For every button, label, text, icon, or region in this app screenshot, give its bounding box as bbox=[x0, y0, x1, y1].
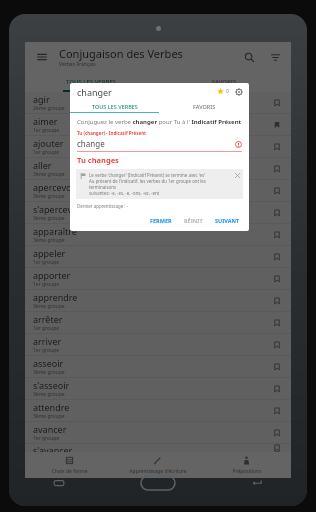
staticText: 1er groupe bbox=[33, 127, 60, 134]
button[interactable]: Bookmark avancer bbox=[271, 427, 283, 439]
button[interactable]: avancer bbox=[25, 422, 291, 443]
staticText: Tu (changer) - Indicatif Présent bbox=[77, 130, 147, 136]
staticText: apparaître bbox=[33, 225, 77, 237]
staticText: 1er groupe bbox=[33, 259, 60, 266]
staticText: changer bbox=[77, 86, 112, 98]
staticText: Tu changes bbox=[77, 155, 119, 165]
other: Error bbox=[234, 140, 242, 148]
button[interactable]: Bookmark attendre bbox=[271, 405, 283, 417]
staticText: RÉINIT bbox=[184, 217, 203, 224]
staticText: Conjugaison des Verbes bbox=[59, 46, 183, 61]
button[interactable]: SUIVANT bbox=[212, 215, 243, 226]
button[interactable]: Bookmark apercevoir bbox=[271, 185, 283, 197]
staticText: 1er groupe bbox=[33, 281, 60, 288]
button[interactable]: Bookmark appeler bbox=[271, 251, 283, 263]
staticText: 3ème groupe bbox=[33, 369, 65, 376]
staticText: 3ème groupe bbox=[33, 303, 65, 310]
button[interactable]: apercevoir bbox=[25, 180, 291, 201]
staticText: ajouter bbox=[33, 137, 64, 149]
button[interactable]: Bookmark arriver bbox=[271, 339, 283, 351]
button[interactable]: Bookmark apparaître bbox=[271, 229, 283, 241]
button[interactable]: Choix de forme bbox=[25, 452, 113, 478]
staticText: Apprentissage d'écriture bbox=[129, 468, 187, 475]
staticText: 1er groupe bbox=[33, 149, 60, 156]
staticText: s'avancer bbox=[33, 444, 73, 452]
staticText: apporter bbox=[33, 269, 71, 281]
staticText: Conjuguez le verbe changer pour Tu à l' … bbox=[77, 118, 242, 126]
staticText: apercevoir bbox=[33, 181, 78, 193]
button[interactable]: Prépositions bbox=[202, 452, 291, 478]
button[interactable]: Bookmark aller bbox=[271, 163, 283, 175]
button[interactable]: attendre bbox=[25, 400, 291, 421]
button[interactable]: Bookmark apprendre bbox=[271, 295, 283, 307]
staticText: arriver bbox=[33, 335, 62, 347]
staticText: 2ème groupe bbox=[33, 105, 65, 112]
staticText: apprendre bbox=[33, 291, 78, 303]
button[interactable]: aimer bbox=[25, 114, 291, 135]
staticText: TOUS LES VERBES bbox=[66, 78, 117, 86]
staticText: asseoir bbox=[33, 357, 64, 369]
button[interactable]: ajouter bbox=[25, 136, 291, 157]
staticText: 1er groupe bbox=[33, 325, 60, 332]
staticText: suivantes: -e, -es, -e, -ons, -ez, -ent bbox=[89, 190, 160, 196]
staticText: Le verbe 'changer' (Indicatif Présent) s… bbox=[89, 172, 206, 178]
button[interactable]: Bookmark s'avancer bbox=[271, 444, 283, 452]
button[interactable]: TOUS LES VERBES bbox=[70, 100, 159, 113]
button[interactable]: Search bbox=[241, 49, 257, 65]
button[interactable]: agir bbox=[25, 92, 291, 113]
button[interactable]: Bookmark apporter bbox=[271, 273, 283, 285]
button[interactable]: FAVORIS bbox=[159, 100, 249, 113]
button[interactable]: Bookmark asseoir bbox=[271, 361, 283, 373]
button[interactable]: Bookmark aimer bbox=[271, 119, 283, 131]
button[interactable]: arriver bbox=[25, 334, 291, 355]
staticText: 1er groupe bbox=[33, 347, 60, 354]
staticText: s'apercevoir bbox=[33, 203, 84, 215]
button[interactable]: FAVORIS bbox=[158, 72, 291, 92]
staticText: attendre bbox=[33, 401, 70, 413]
staticText: SUIVANT bbox=[215, 217, 240, 224]
button[interactable]: Bookmark s'asseoir bbox=[271, 383, 283, 395]
button[interactable]: apprendre bbox=[25, 290, 291, 311]
staticText: Choix de forme bbox=[51, 468, 88, 475]
staticText: 3ème groupe bbox=[33, 171, 65, 178]
button[interactable]: s'avancer bbox=[25, 444, 291, 452]
button[interactable]: Close hint bbox=[234, 172, 240, 178]
button[interactable]: Bookmark arrêter bbox=[271, 317, 283, 329]
button[interactable]: arrêter bbox=[25, 312, 291, 333]
staticText: Prépositions bbox=[232, 468, 262, 475]
staticText: change bbox=[77, 138, 105, 149]
button[interactable]: appeler bbox=[25, 246, 291, 267]
staticText: FERMER bbox=[150, 217, 172, 224]
button[interactable]: TOUS LES VERBES bbox=[25, 72, 158, 92]
staticText: avancer bbox=[33, 423, 67, 435]
button[interactable]: Settings bbox=[233, 86, 244, 97]
staticText: arrêter bbox=[33, 313, 63, 325]
button[interactable]: aller bbox=[25, 158, 291, 179]
staticText: Au présent de l'indicatif, les verbes du… bbox=[89, 178, 232, 190]
button[interactable]: Apprentissage d'écriture bbox=[113, 452, 202, 478]
button[interactable]: Menu bbox=[33, 48, 51, 66]
staticText: Verbes Français bbox=[59, 61, 96, 68]
button[interactable]: apparaître bbox=[25, 224, 291, 245]
staticText: TOUS LES VERBES bbox=[92, 103, 138, 110]
button[interactable]: Filter bbox=[267, 49, 283, 65]
button[interactable]: RÉINIT bbox=[181, 215, 206, 226]
button[interactable]: s'apercevoir bbox=[25, 202, 291, 223]
staticText: FAVORIS bbox=[212, 78, 237, 86]
button[interactable]: apporter bbox=[25, 268, 291, 289]
button[interactable]: FERMER bbox=[147, 215, 175, 226]
button[interactable]: asseoir bbox=[25, 356, 291, 377]
staticText: s'asseoir bbox=[33, 379, 70, 391]
button[interactable]: s'asseoir bbox=[25, 378, 291, 399]
button[interactable]: Bookmark agir bbox=[271, 97, 283, 109]
staticText: 1er groupe bbox=[33, 435, 60, 442]
button[interactable]: Bookmark s'apercevoir bbox=[271, 207, 283, 219]
staticText: 3ème groupe bbox=[33, 237, 65, 244]
button[interactable]: Bookmark ajouter bbox=[271, 141, 283, 153]
staticText: 0 bbox=[226, 88, 229, 95]
staticText: 3ème groupe bbox=[33, 391, 65, 398]
staticText: 3ème groupe bbox=[33, 193, 65, 200]
staticText: FAVORIS bbox=[193, 103, 216, 110]
staticText: appeler bbox=[33, 247, 66, 259]
button[interactable]: Favorite bbox=[215, 86, 226, 97]
